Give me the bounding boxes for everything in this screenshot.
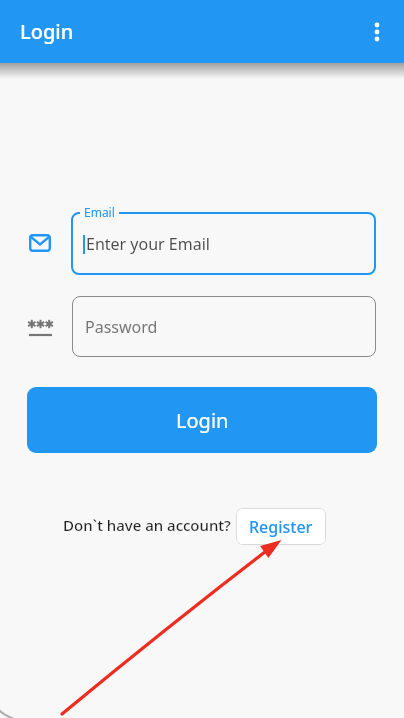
button[interactable]: Enter your Email xyxy=(71,212,376,275)
staticText: Login xyxy=(20,18,74,45)
staticText: Email xyxy=(84,204,115,220)
staticText: Enter your Email xyxy=(86,233,210,255)
staticText: Login xyxy=(176,407,229,434)
staticText: Password xyxy=(85,316,158,338)
staticText: Don`t have an account? xyxy=(63,515,231,535)
button[interactable] xyxy=(365,20,389,44)
button[interactable]: Register xyxy=(236,508,326,545)
staticText: Register xyxy=(249,516,313,538)
button[interactable]: Password xyxy=(72,296,376,357)
button[interactable]: Login xyxy=(27,387,377,453)
